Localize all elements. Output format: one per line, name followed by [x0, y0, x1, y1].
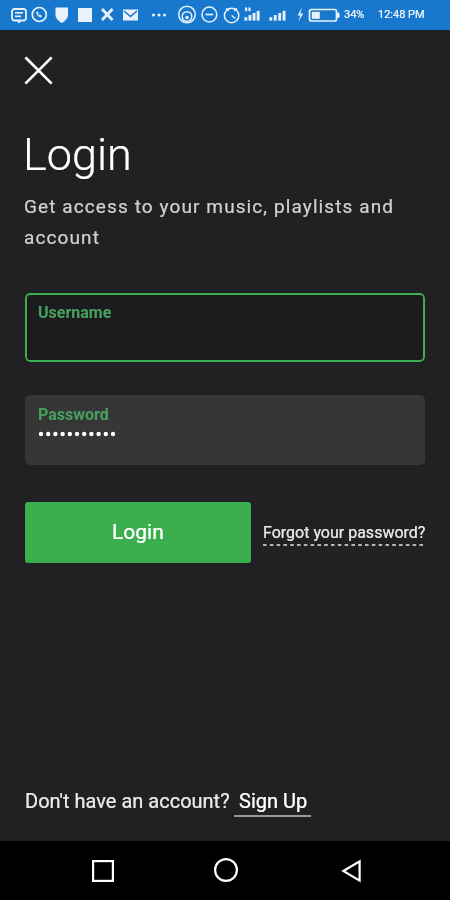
- staticText: Password: [38, 405, 109, 424]
- button[interactable]: Forgot your password?: [263, 523, 429, 553]
- button[interactable]: Login: [25, 502, 251, 563]
- staticText: Forgot your password?: [263, 523, 426, 542]
- staticText: Login: [112, 520, 164, 545]
- button[interactable]: Password: [25, 395, 425, 465]
- staticText: Get access to your music, playlists and …: [24, 195, 424, 249]
- button[interactable]: Username: [25, 293, 425, 362]
- staticText: Username: [38, 303, 112, 322]
- button[interactable]: Home: [201, 845, 251, 895]
- staticText: 12:48 PM: [378, 8, 425, 21]
- button[interactable]: Back: [326, 846, 376, 896]
- staticText: 34%: [344, 8, 365, 21]
- staticText: Sign Up: [239, 789, 308, 812]
- button[interactable]: Recents: [78, 846, 128, 896]
- staticText: Don't have an account?: [25, 789, 230, 812]
- staticText: Login: [23, 128, 132, 181]
- button[interactable]: Close: [16, 48, 60, 92]
- button[interactable]: Sign Up: [234, 786, 311, 820]
